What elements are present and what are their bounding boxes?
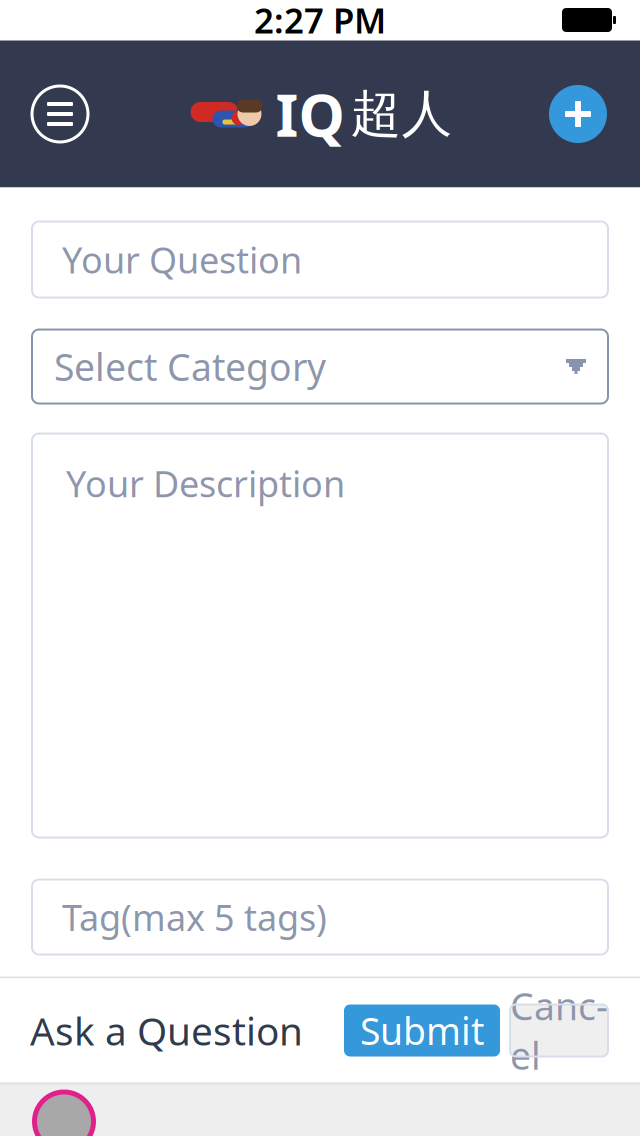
staticText: IQ xyxy=(275,75,344,153)
staticText: Tag(max 5 tags) xyxy=(62,893,327,941)
button[interactable]: Select Category xyxy=(32,329,608,403)
staticText: Ask a Question xyxy=(30,1005,303,1056)
staticText: Select Category xyxy=(54,342,326,391)
staticText: Your Question xyxy=(62,236,302,283)
button[interactable]: Menu xyxy=(28,82,92,146)
button[interactable]: Cancel xyxy=(510,1004,608,1056)
button[interactable]: Add xyxy=(546,82,610,146)
staticText: Submit xyxy=(360,1006,484,1055)
staticText: Cancel xyxy=(510,981,608,1080)
staticText: 超人 xyxy=(350,83,452,145)
button[interactable]: Submit xyxy=(344,1004,500,1056)
staticText: Your Description xyxy=(66,459,345,507)
staticText: 2:27 PM xyxy=(254,0,386,43)
